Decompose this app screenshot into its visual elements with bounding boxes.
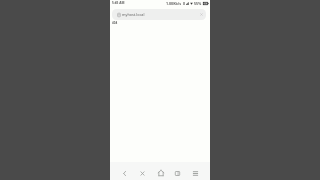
- button[interactable]: Back: [116, 162, 133, 180]
- button[interactable]: Tabs: [169, 162, 186, 180]
- button[interactable]: myhost.local: [112, 9, 206, 20]
- button[interactable]: Menu: [187, 162, 204, 180]
- staticText: 5:45 AM: [112, 1, 125, 5]
- button[interactable]: Home: [152, 162, 169, 180]
- button[interactable]: Stop: [134, 162, 151, 180]
- staticText: myhost.local: [122, 12, 145, 17]
- staticText: 55%: [194, 1, 202, 6]
- staticText: 404: [112, 21, 118, 25]
- staticText: 1.00Kb/s: [166, 1, 182, 6]
